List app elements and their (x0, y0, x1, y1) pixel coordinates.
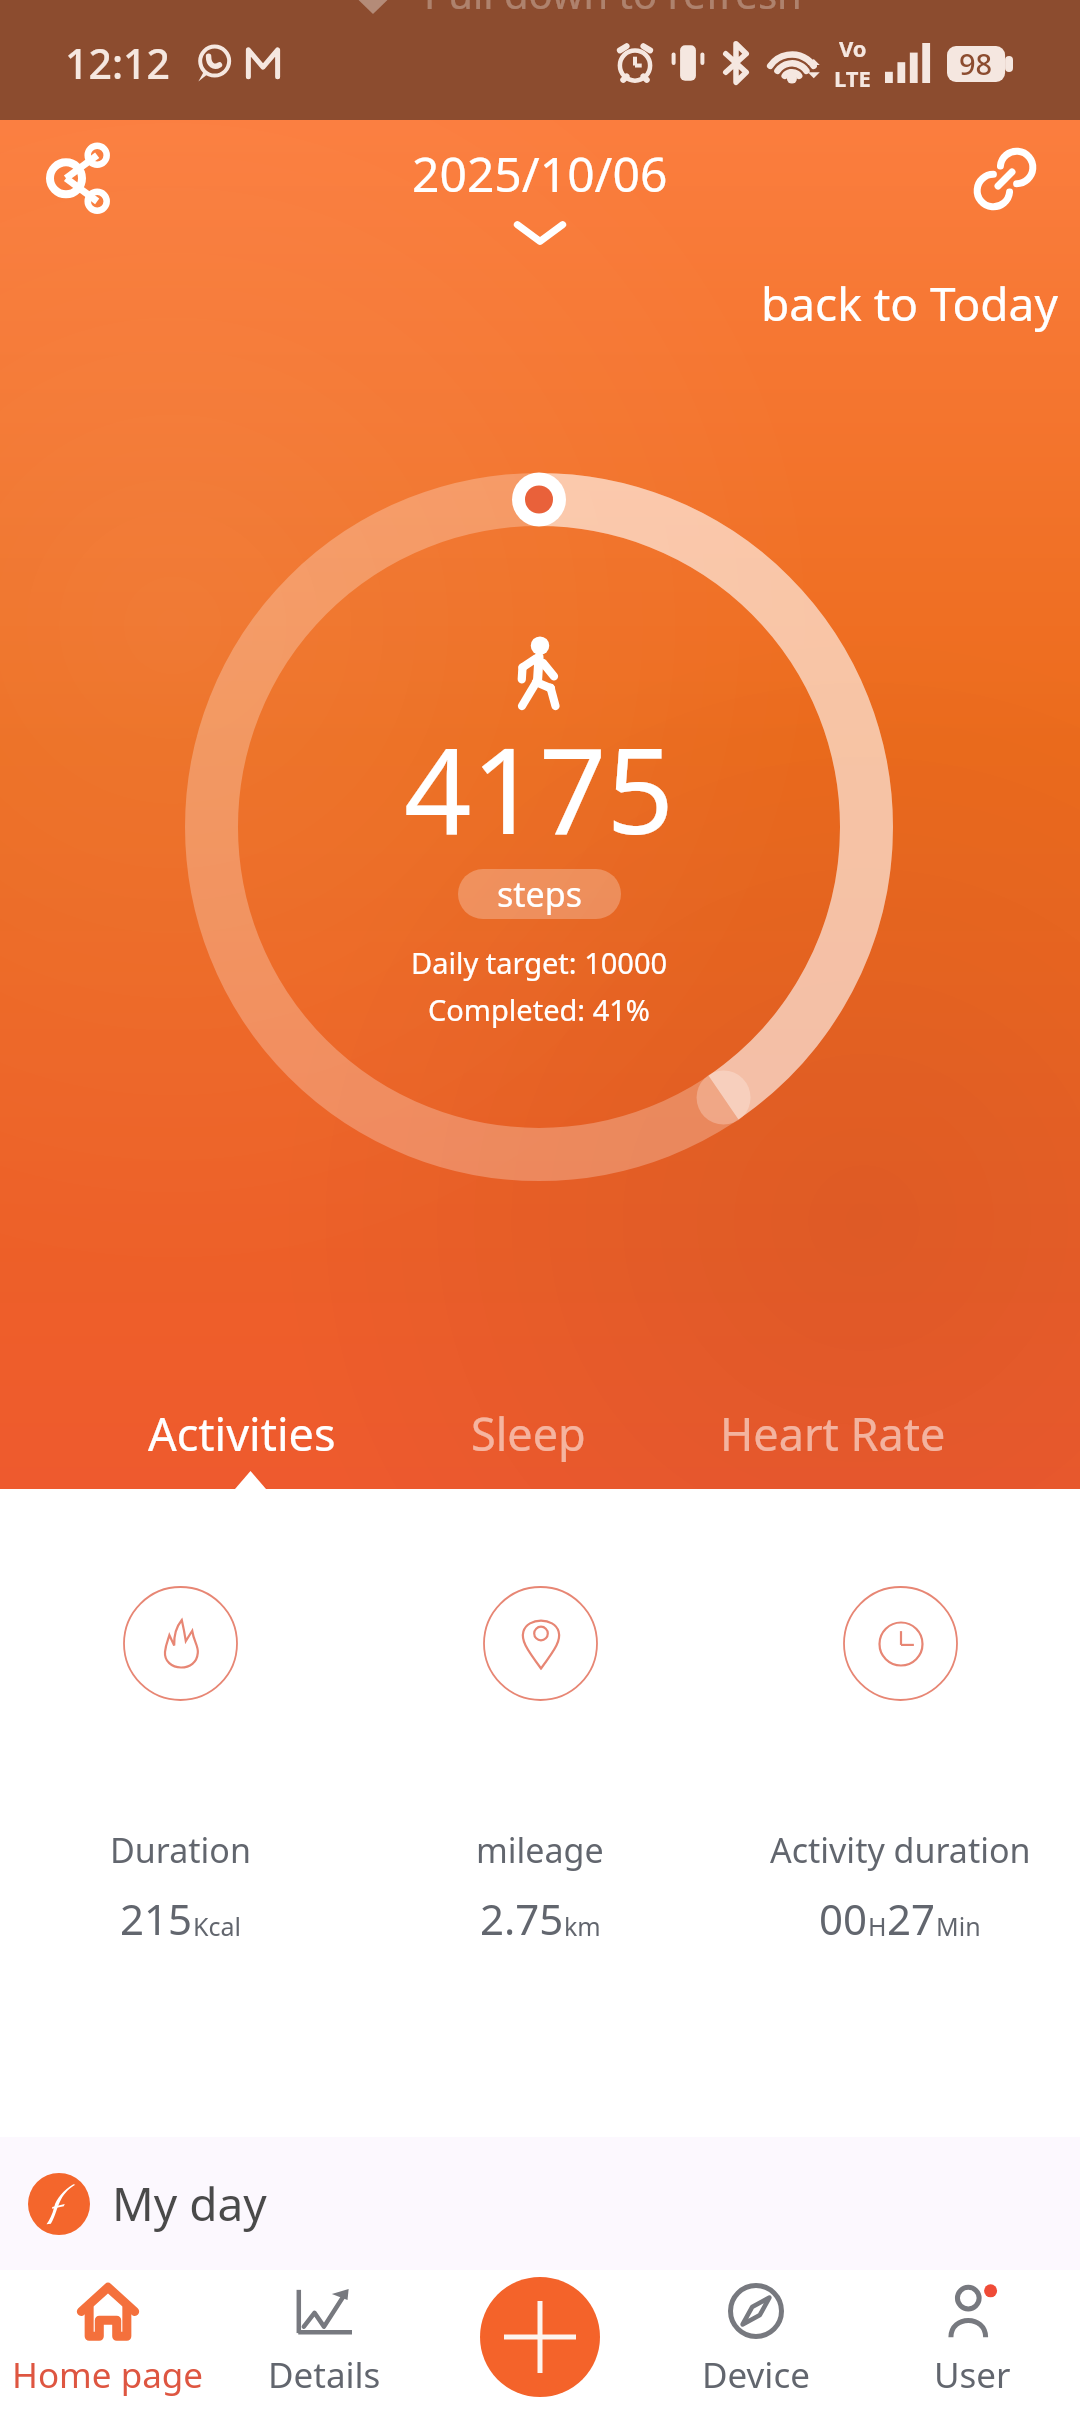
staticText: Min (936, 1909, 981, 1943)
button[interactable]: Distance (483, 1586, 598, 1701)
button[interactable]: 2025/10/06 (412, 141, 668, 246)
staticText: 2.75 (480, 1890, 564, 1947)
staticText: Sleep (471, 1403, 586, 1464)
staticText: LTE (834, 63, 871, 93)
button[interactable]: Link device (964, 138, 1046, 220)
staticText: Daily target: 10000 (411, 943, 668, 982)
staticText: Duration (110, 1827, 251, 1873)
staticText: Vo (839, 33, 867, 63)
button[interactable]: Details (216, 2270, 432, 2412)
staticText: My day (112, 2172, 267, 2235)
staticText: Kcal (193, 1909, 241, 1943)
staticText: Activities (148, 1403, 336, 1464)
button[interactable]: Sleep (471, 1377, 586, 1489)
staticText: Pull down to refresh (424, 0, 802, 20)
staticText: Device (702, 2351, 810, 2399)
staticText: Activity duration (770, 1827, 1031, 1873)
staticText: 98 (959, 44, 993, 83)
button[interactable]: back to Today (761, 272, 1080, 335)
button[interactable]: Time (843, 1586, 958, 1701)
staticText: 27 (887, 1890, 936, 1947)
button[interactable]: Share (42, 140, 120, 218)
staticText: User (934, 2351, 1011, 2399)
staticText: Completed: 41% (428, 990, 650, 1029)
button[interactable]: Home page (0, 2270, 216, 2412)
button[interactable]: Device (648, 2270, 864, 2412)
button[interactable]: Activities (148, 1377, 336, 1489)
staticText: Details (268, 2351, 381, 2399)
staticText: 215 (120, 1890, 193, 1947)
staticText: 12:12 (65, 35, 170, 91)
staticText: km (564, 1909, 601, 1943)
button[interactable]: Add (480, 2277, 600, 2397)
staticText: 4175 (404, 708, 674, 869)
staticText: steps (497, 871, 582, 917)
button[interactable]: Calories (123, 1586, 238, 1701)
staticText: Home page (12, 2351, 204, 2399)
button[interactable]: User (864, 2270, 1080, 2412)
button[interactable]: My day (0, 2137, 1080, 2270)
staticText: mileage (476, 1827, 604, 1873)
staticText: Heart Rate (720, 1403, 946, 1464)
button[interactable]: Heart Rate (720, 1377, 946, 1489)
staticText: 00 (819, 1890, 868, 1947)
staticText: 2025/10/06 (412, 141, 668, 206)
staticText: H (868, 1909, 887, 1943)
